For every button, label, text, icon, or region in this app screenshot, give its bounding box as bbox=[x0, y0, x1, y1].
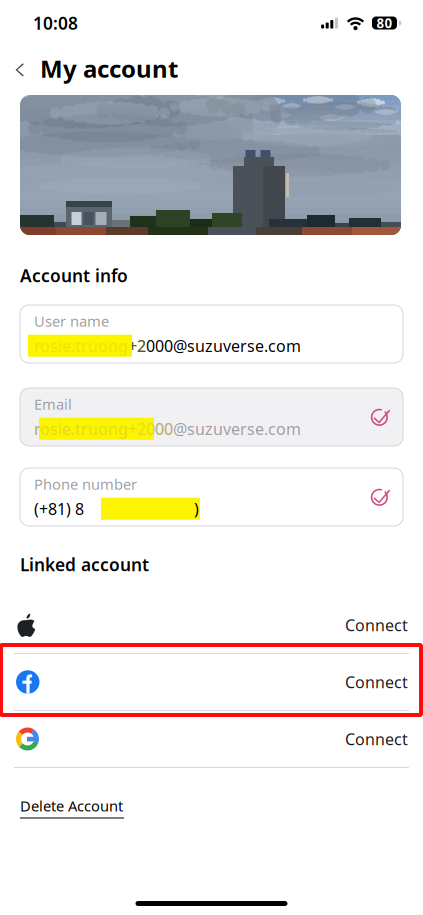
staticText: rosie.truong+2000@suzuverse.com bbox=[34, 335, 301, 356]
staticText: Phone number bbox=[34, 474, 137, 494]
staticText: rosie.truong+2000 bbox=[34, 418, 173, 439]
staticText: Delete Account bbox=[20, 796, 123, 815]
button[interactable]: Connect bbox=[0, 654, 423, 710]
staticText: My account bbox=[40, 53, 178, 84]
staticText: User name bbox=[34, 311, 109, 331]
staticText: Email bbox=[34, 394, 72, 414]
button[interactable]: Delete Account bbox=[0, 792, 144, 822]
staticText: Connect bbox=[345, 671, 408, 693]
staticText: rosie.truong+2 bbox=[34, 335, 146, 356]
staticText: 10:08 bbox=[33, 11, 78, 34]
staticText: 80 bbox=[376, 14, 392, 32]
button[interactable]: Connect bbox=[0, 597, 423, 653]
staticText: Connect bbox=[345, 728, 408, 750]
staticText: Connect bbox=[345, 614, 408, 636]
button[interactable]: Back bbox=[0, 51, 40, 89]
staticText: Account info bbox=[20, 264, 128, 287]
button[interactable]: Connect bbox=[0, 711, 423, 767]
staticText: ) bbox=[194, 498, 199, 519]
staticText: (+81) 8 bbox=[34, 498, 84, 519]
staticText: rosie.truong+2000@suzuverse.com bbox=[34, 418, 301, 439]
staticText: Linked account bbox=[20, 553, 149, 576]
